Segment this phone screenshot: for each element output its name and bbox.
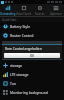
button[interactable]: Outstanding [0,4,16,16]
button[interactable]: Router Control [0,31,64,40]
staticText: storage [10,63,23,68]
staticText: Outstanding [0,12,16,16]
button[interactable]: LTE storage [0,70,64,79]
button[interactable]: Value Chunk [16,4,32,16]
staticText: Tun [10,81,16,86]
button[interactable]: Monitoring background [0,88,64,97]
staticText: Value Chunk [16,12,32,16]
button[interactable]: Sources [32,4,48,16]
staticText: Optimiser [50,12,63,16]
staticText: Router Control [10,33,34,38]
button[interactable]: storage [0,61,64,70]
staticText: Rom Control angehalten [5,47,42,51]
staticText: Battery Style [10,24,31,29]
staticText: Monitoring background [10,90,48,95]
button[interactable]: Tun [0,79,64,88]
staticText: LTE storage [10,72,29,77]
button[interactable]: OK [4,53,60,58]
button[interactable]: Battery Style [0,22,64,31]
staticText: OK [30,54,35,58]
staticText: Sources [35,12,45,16]
button[interactable]: Optimiser [48,4,64,16]
staticText: Quick Start [2,18,17,22]
